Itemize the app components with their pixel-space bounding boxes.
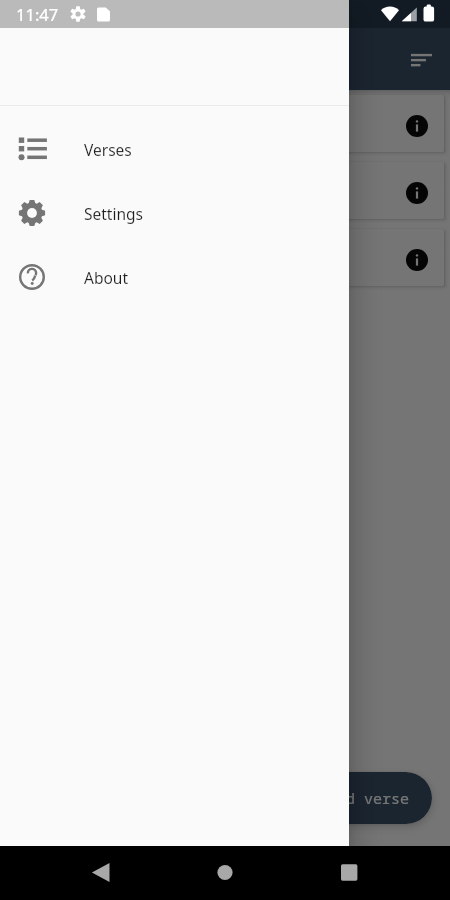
button[interactable]: About [0, 245, 349, 309]
staticText: Add verse [328, 788, 410, 808]
button[interactable] [6, 229, 444, 286]
staticText: Verses [84, 139, 132, 160]
staticText: About [84, 267, 128, 288]
button[interactable]: Add verse [306, 772, 432, 824]
button[interactable] [6, 162, 444, 219]
button[interactable]: Verses [0, 117, 349, 181]
staticText: 11:47 [16, 3, 59, 25]
button[interactable]: Settings [0, 181, 349, 245]
button[interactable] [6, 95, 444, 152]
button[interactable]: Sort [398, 36, 446, 84]
staticText: Settings [84, 203, 143, 224]
